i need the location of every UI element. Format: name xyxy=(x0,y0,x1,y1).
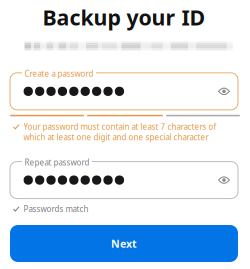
staticText: Backup your ID xyxy=(42,3,205,31)
staticText: Repeat password xyxy=(24,157,89,168)
staticText: Your password must contain at least 7 ch… xyxy=(23,121,216,142)
button[interactable]: Next xyxy=(10,225,238,262)
staticText: Passwords match xyxy=(23,204,88,214)
staticText: Create a password xyxy=(24,68,93,79)
staticText: Next xyxy=(111,236,137,251)
